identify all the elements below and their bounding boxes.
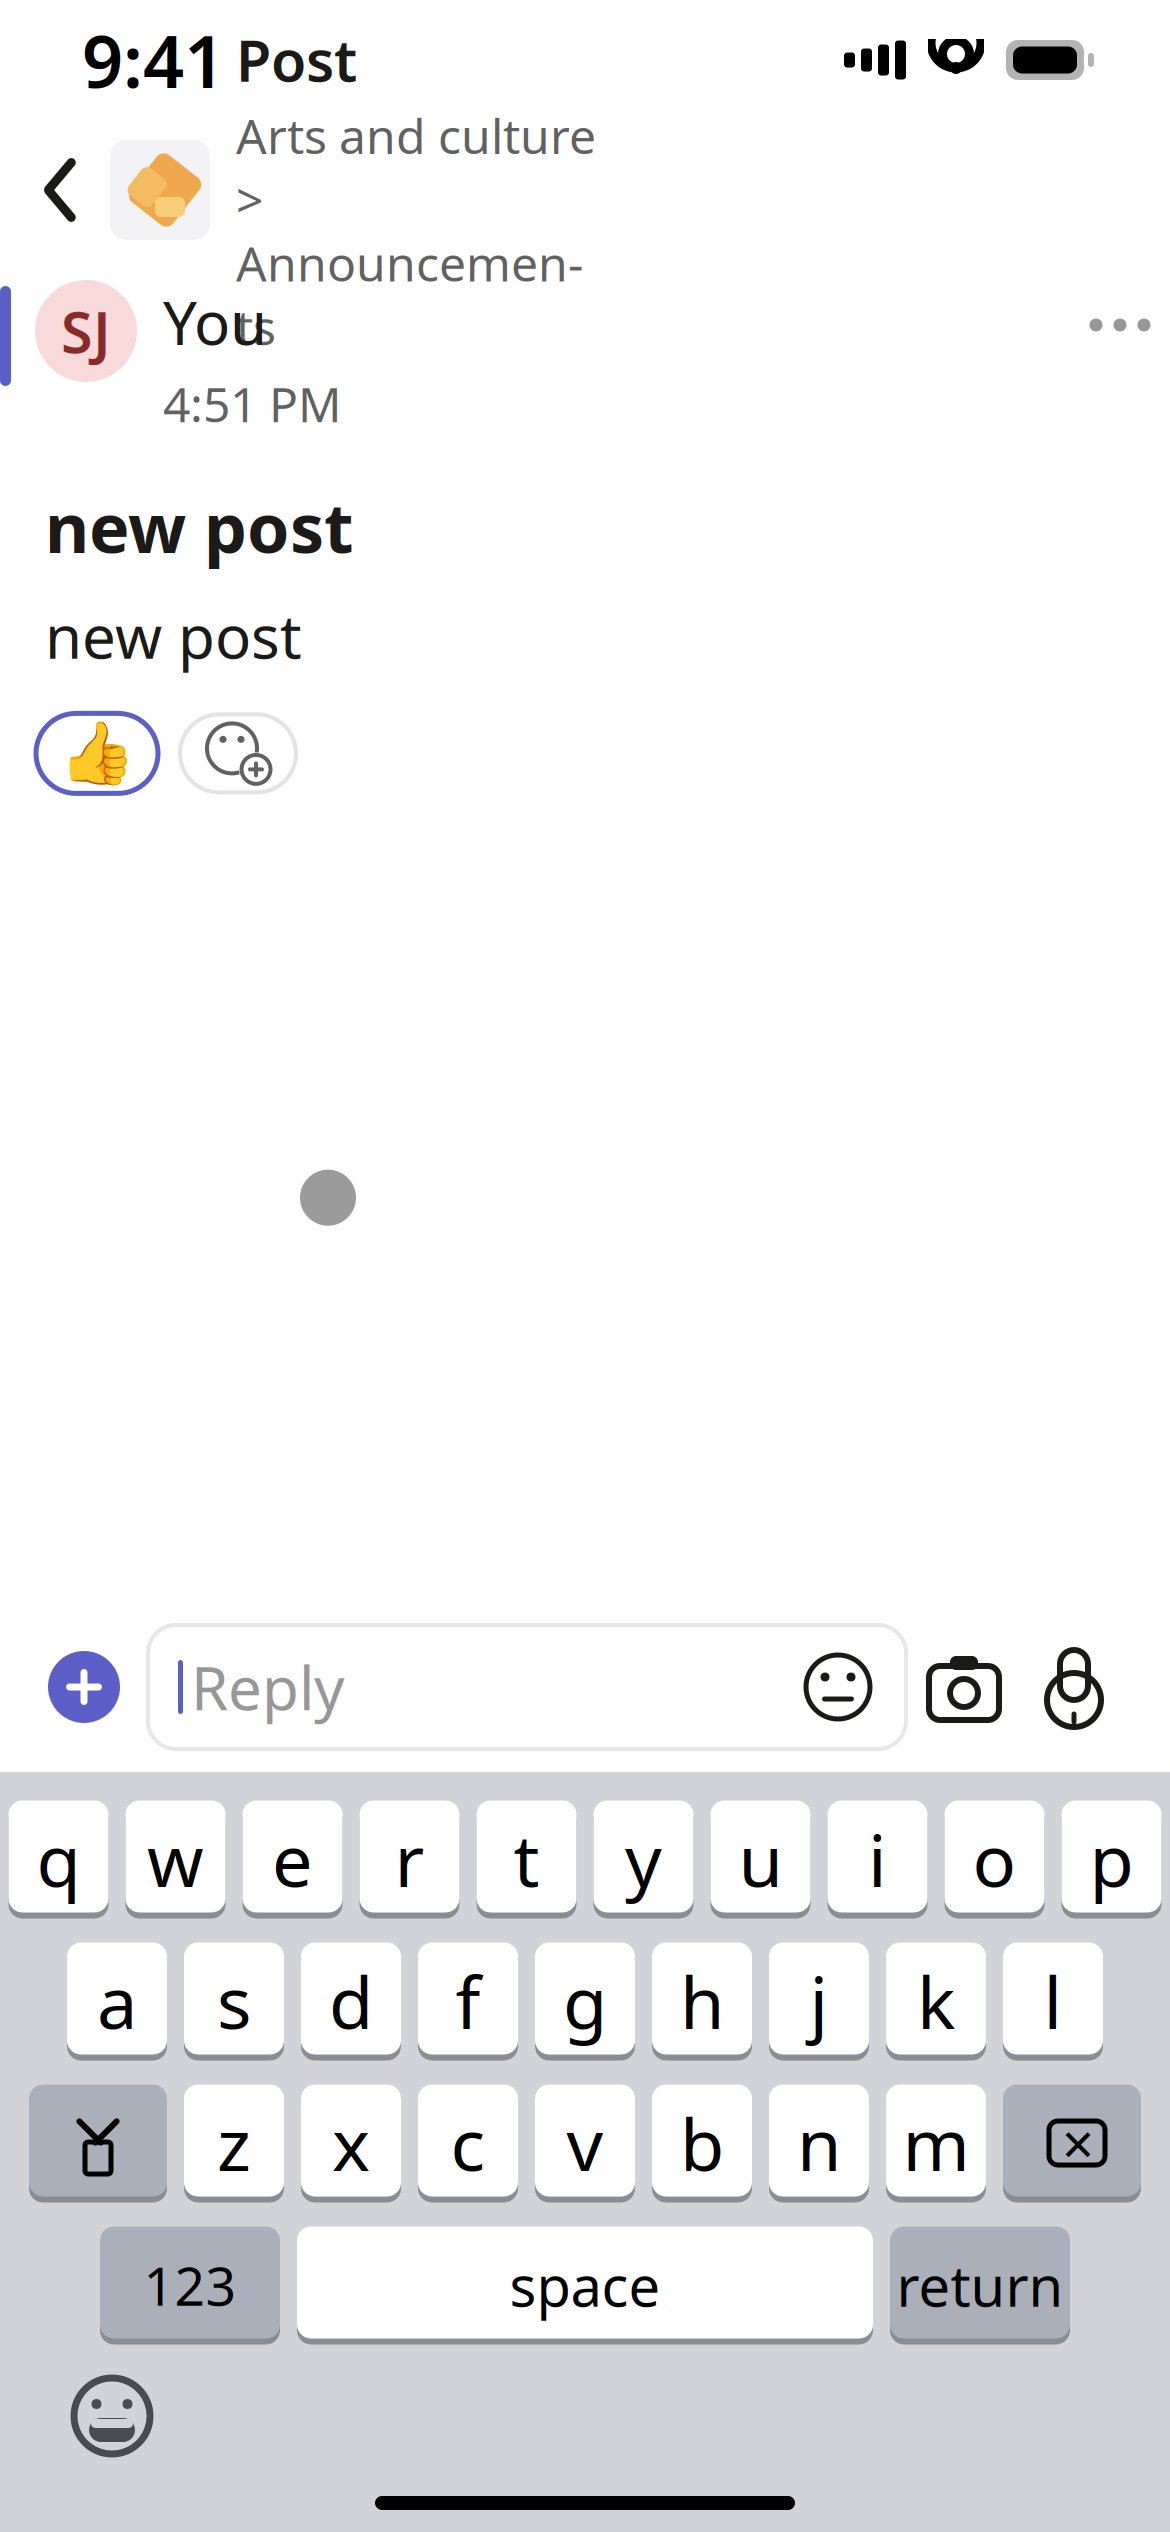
button[interactable]: Reply (148, 1625, 906, 1749)
button[interactable]: f (418, 1942, 518, 2060)
button[interactable]: v (535, 2084, 635, 2202)
button[interactable]: d (301, 1942, 401, 2060)
staticText: y (625, 1811, 662, 1907)
button[interactable]: z (184, 2084, 284, 2202)
button[interactable]: More options (1070, 280, 1170, 370)
button[interactable]: w (125, 1800, 225, 1918)
staticText: Arts and culture > Announcements (236, 104, 596, 359)
button[interactable]: Back (10, 135, 110, 245)
staticText: i (868, 1811, 887, 1907)
button[interactable]: g (535, 1942, 635, 2060)
button[interactable]: c (418, 2084, 518, 2202)
button[interactable]: q (8, 1800, 108, 1918)
staticText: l (1043, 1953, 1062, 2049)
staticText: g (563, 1953, 607, 2049)
button[interactable]: e (242, 1800, 342, 1918)
staticText: p (1089, 1811, 1133, 1907)
staticText: x (332, 2095, 370, 2191)
staticText: You (163, 282, 267, 362)
staticText: new post (45, 596, 302, 675)
staticText: return (896, 2248, 1063, 2322)
button[interactable]: return (890, 2226, 1070, 2344)
staticText: r (394, 1811, 424, 1907)
staticText: t (513, 1811, 539, 1907)
staticText: d (329, 1953, 373, 2049)
staticText: n (797, 2095, 841, 2191)
button[interactable]: s (184, 1942, 284, 2060)
button[interactable]: k (886, 1942, 986, 2060)
staticText: c (450, 2095, 485, 2191)
button[interactable]: j (769, 1942, 869, 2060)
button[interactable]: space (297, 2226, 873, 2344)
staticText: w (147, 1811, 204, 1907)
button[interactable]: Shift (29, 2084, 167, 2202)
staticText: Reply (191, 1647, 345, 1727)
button[interactable]: x (301, 2084, 401, 2202)
button[interactable]: r (359, 1800, 459, 1918)
staticText: 123 (143, 2250, 236, 2320)
staticText: 4:51 PM (163, 372, 342, 435)
button[interactable]: Post (110, 130, 625, 250)
button[interactable]: Add reaction (180, 714, 296, 792)
staticText: space (509, 2248, 660, 2322)
staticText: new post (45, 481, 354, 572)
button[interactable]: 123 (100, 2226, 280, 2344)
staticText: k (917, 1953, 955, 2049)
button[interactable]: o (944, 1800, 1044, 1918)
staticText: b (680, 2095, 724, 2191)
button[interactable]: Thumbs up reaction (36, 713, 158, 793)
staticText: × (1062, 2106, 1094, 2180)
button[interactable]: m (886, 2084, 986, 2202)
button[interactable]: Emoji keyboard (56, 2360, 168, 2472)
staticText: o (972, 1811, 1016, 1907)
button[interactable]: n (769, 2084, 869, 2202)
staticText: u (738, 1811, 782, 1907)
staticText: 9:41 (82, 12, 225, 108)
button[interactable]: a (67, 1942, 167, 2060)
staticText: m (902, 2095, 969, 2191)
staticText: q (36, 1811, 80, 1907)
staticText: f (455, 1953, 480, 2049)
button[interactable]: i (827, 1800, 927, 1918)
button[interactable]: h (652, 1942, 752, 2060)
button[interactable]: l (1003, 1942, 1103, 2060)
button[interactable]: y (593, 1800, 693, 1918)
button[interactable]: Camera (906, 1629, 1022, 1745)
staticText: s (217, 1953, 251, 2049)
staticText: v (566, 2095, 603, 2191)
button[interactable]: Delete (1003, 2084, 1141, 2202)
button[interactable]: b (652, 2084, 752, 2202)
staticText: SJ (61, 293, 111, 369)
staticText: 👍 (59, 718, 135, 788)
button[interactable]: p (1061, 1800, 1161, 1918)
button[interactable]: t (476, 1800, 576, 1918)
staticText: a (97, 1953, 137, 2049)
staticText: Post (236, 21, 357, 97)
button[interactable]: Audio message (1022, 1629, 1126, 1745)
staticText: e (272, 1811, 313, 1907)
button[interactable]: u (710, 1800, 810, 1918)
staticText: j (809, 1953, 828, 2049)
staticText: z (217, 2095, 251, 2191)
staticText: h (680, 1953, 724, 2049)
button[interactable]: Add attachment (48, 1651, 120, 1723)
